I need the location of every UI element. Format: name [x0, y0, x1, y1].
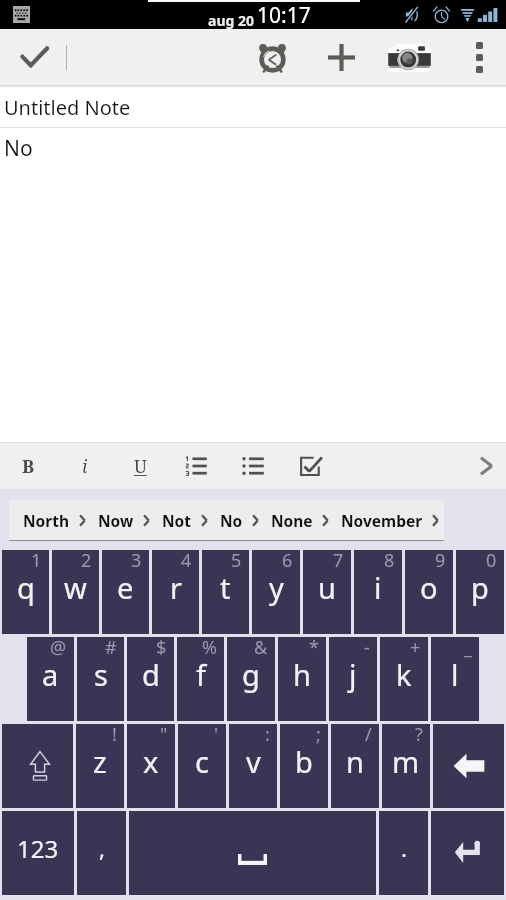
button[interactable]: November [341, 500, 423, 540]
button[interactable]: More formatting [464, 443, 506, 489]
staticText: y [269, 568, 284, 607]
staticText: i [82, 454, 88, 479]
staticText: / [365, 722, 372, 747]
staticText: ; [316, 722, 321, 747]
staticText: % [202, 635, 217, 660]
button[interactable]: Space [129, 811, 376, 895]
button[interactable]: Add [317, 29, 365, 85]
button[interactable]: 123 [2, 811, 74, 895]
staticText: None [271, 510, 313, 531]
staticText: ! [112, 722, 117, 747]
button[interactable]: Enter [431, 811, 504, 895]
button[interactable]: Now [98, 500, 134, 540]
staticText: j [349, 655, 357, 694]
staticText: t [220, 568, 231, 607]
button[interactable]: U [117, 443, 163, 489]
button[interactable]: Backspace [433, 724, 504, 808]
button[interactable]: 5 [202, 550, 249, 634]
button[interactable]: More options [458, 29, 500, 85]
staticText: - [364, 635, 370, 660]
staticText: B [22, 454, 35, 479]
staticText: + [410, 635, 421, 660]
button[interactable]: - [329, 637, 377, 721]
staticText: c [195, 742, 209, 781]
staticText: 123 [17, 832, 59, 865]
staticText: Not [162, 510, 192, 531]
staticText: . [401, 833, 407, 863]
button[interactable]: North [23, 500, 70, 540]
button[interactable]: ? [382, 724, 430, 808]
staticText: U [134, 454, 147, 479]
button[interactable]: , [77, 811, 126, 895]
button[interactable]: ; [280, 724, 328, 808]
button[interactable]: 7 [303, 550, 351, 634]
button[interactable]: 3 [102, 550, 149, 634]
staticText: No [220, 510, 243, 531]
staticText: ? [415, 722, 423, 747]
button[interactable]: . [379, 811, 428, 895]
staticText: z [93, 742, 107, 781]
staticText: _ [464, 635, 472, 660]
staticText: r [170, 568, 182, 607]
staticText: 9 [435, 548, 446, 573]
button[interactable]: # [77, 637, 124, 721]
button[interactable]: 2 [52, 550, 99, 634]
button[interactable]: i [62, 443, 108, 489]
button[interactable]: Checklist [288, 443, 334, 489]
staticText: w [64, 568, 87, 607]
button[interactable]: Numbered list [173, 443, 219, 489]
button[interactable]: Reminder [248, 29, 296, 85]
button[interactable]: " [127, 724, 175, 808]
staticText: North [23, 510, 70, 531]
staticText: b [295, 742, 313, 781]
staticText: 1 [31, 548, 42, 573]
staticText: aug 20 [208, 11, 254, 30]
staticText: s [94, 655, 108, 694]
button[interactable]: Bulleted list [230, 443, 276, 489]
staticText: o [420, 568, 438, 607]
button[interactable]: % [177, 637, 224, 721]
staticText: 7 [333, 548, 344, 573]
staticText: i [374, 568, 382, 607]
button[interactable]: B [5, 443, 51, 489]
button[interactable]: Done [8, 29, 60, 85]
button[interactable]: Camera [385, 29, 433, 85]
staticText: v [246, 742, 261, 781]
staticText: q [17, 568, 35, 607]
staticText: * [309, 635, 319, 660]
button[interactable]: / [331, 724, 379, 808]
button[interactable]: $ [127, 637, 174, 721]
button[interactable]: : [229, 724, 277, 808]
button[interactable]: ! [76, 724, 124, 808]
staticText: @ [50, 635, 67, 660]
button[interactable]: 4 [152, 550, 199, 634]
button[interactable]: Shift [2, 724, 73, 808]
button[interactable]: 6 [252, 550, 300, 634]
button[interactable]: _ [431, 637, 479, 721]
button[interactable]: None [271, 500, 313, 540]
staticText: u [318, 568, 336, 607]
staticText: Untitled Note [4, 94, 131, 121]
button[interactable]: 8 [354, 550, 402, 634]
button[interactable]: Not [162, 500, 192, 540]
button[interactable]: @ [27, 637, 74, 721]
staticText: e [117, 568, 134, 607]
staticText: & [254, 635, 268, 660]
staticText: 3 [131, 548, 142, 573]
button[interactable]: 0 [456, 550, 504, 634]
staticText: g [242, 655, 260, 694]
button[interactable]: + [380, 637, 428, 721]
button[interactable]: ' [178, 724, 226, 808]
staticText: 10:17 [257, 1, 311, 30]
staticText: , [99, 833, 105, 863]
button[interactable]: & [227, 637, 275, 721]
button[interactable]: * [278, 637, 326, 721]
staticText: 2 [81, 548, 92, 573]
staticText: m [392, 742, 420, 781]
button[interactable]: 9 [405, 550, 453, 634]
staticText: ' [214, 722, 219, 747]
staticText: d [142, 655, 160, 694]
button[interactable]: No [220, 500, 243, 540]
staticText: 6 [282, 548, 293, 573]
button[interactable]: 1 [2, 550, 49, 634]
